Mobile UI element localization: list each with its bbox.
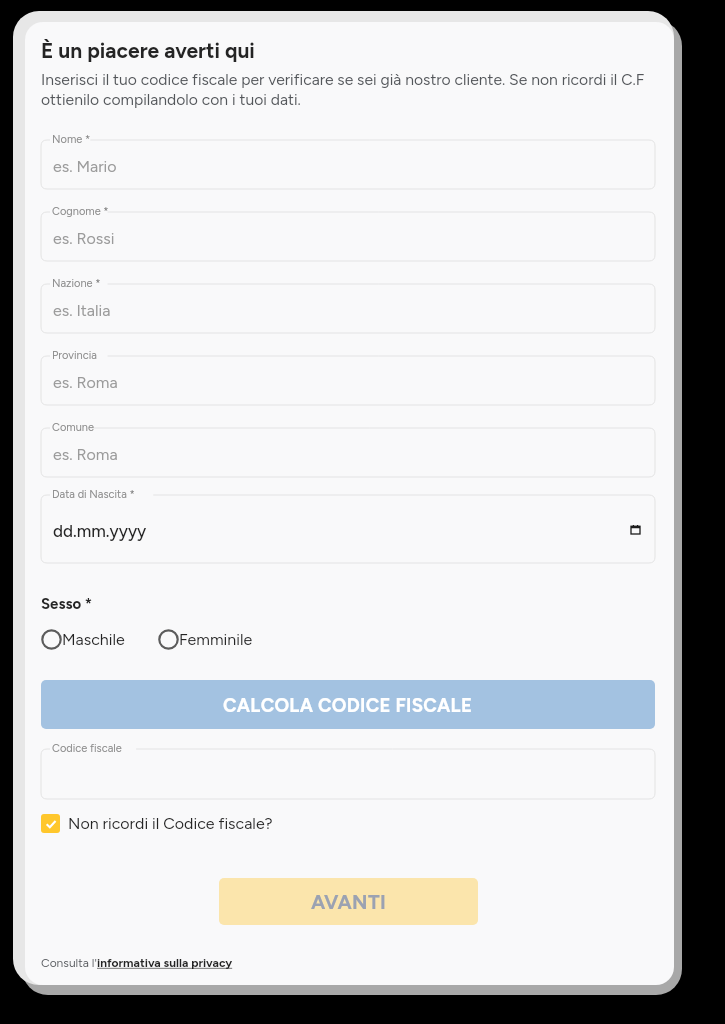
button[interactable]: Provincia bbox=[41, 356, 655, 405]
staticText: es. Mario bbox=[53, 157, 117, 176]
staticText: es. Roma bbox=[53, 445, 118, 464]
button[interactable]: CALCOLA CODICE FISCALE bbox=[41, 680, 655, 729]
staticText: Non ricordi il Codice fiscale? bbox=[68, 814, 273, 833]
staticText: Nazione * bbox=[52, 277, 101, 290]
button[interactable]: Non ricordi il Codice fiscale? bbox=[41, 814, 273, 833]
staticText: es. Rossi bbox=[53, 229, 115, 248]
button[interactable]: Cognome * bbox=[41, 212, 655, 261]
button[interactable]: Maschile bbox=[41, 629, 125, 650]
staticText: CALCOLA CODICE FISCALE bbox=[223, 694, 473, 716]
staticText: Data di Nascita * bbox=[52, 488, 135, 501]
staticText: Sesso * bbox=[41, 595, 92, 613]
staticText: Femminile bbox=[179, 630, 253, 649]
staticText: Maschile bbox=[62, 630, 125, 649]
staticText: dd.mm.yyyy bbox=[53, 521, 147, 541]
staticText: es. Roma bbox=[53, 373, 118, 392]
staticText: Provincia bbox=[52, 349, 97, 362]
staticText: Consulta l' bbox=[41, 956, 97, 970]
staticText: Cognome * bbox=[52, 205, 109, 218]
button[interactable]: Femminile bbox=[158, 629, 253, 650]
button[interactable]: Data di Nascita * bbox=[41, 495, 655, 563]
button[interactable]: informativa sulla privacy bbox=[97, 956, 233, 970]
staticText: Nome * bbox=[52, 133, 91, 146]
button[interactable]: AVANTI bbox=[219, 878, 478, 925]
staticText: Inserisci il tuo codice fiscale per veri… bbox=[41, 70, 655, 108]
staticText: È un piacere averti qui bbox=[41, 38, 255, 63]
button[interactable]: Codice fiscale bbox=[41, 749, 655, 799]
staticText: Codice fiscale bbox=[52, 742, 122, 755]
staticText: es. Italia bbox=[53, 301, 111, 320]
staticText: Comune bbox=[52, 421, 94, 434]
staticText: AVANTI bbox=[311, 890, 387, 914]
button[interactable]: Comune bbox=[41, 428, 655, 477]
button[interactable]: Nome * bbox=[41, 140, 655, 189]
button[interactable]: Nazione * bbox=[41, 284, 655, 333]
button[interactable]: Open calendar bbox=[627, 521, 643, 537]
